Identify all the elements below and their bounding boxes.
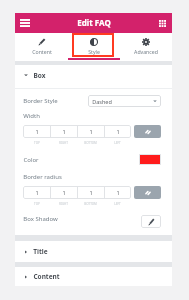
button[interactable]: 1 (105, 186, 131, 199)
staticText: Style (88, 48, 100, 55)
button[interactable]: Title (15, 241, 172, 262)
staticText: TOP (34, 202, 40, 206)
staticText: Advanced (134, 48, 158, 55)
staticText: Width (23, 112, 40, 120)
staticText: 1 (116, 189, 120, 196)
staticText: Border radius (23, 173, 62, 181)
staticText: RIGHT (59, 202, 68, 206)
staticText: 1 (62, 128, 66, 135)
staticText: Box (33, 71, 46, 80)
staticText: Edit FAQ (77, 17, 111, 28)
button[interactable]: Content (15, 267, 172, 286)
staticText: 1 (62, 189, 66, 196)
button[interactable]: 1 (78, 125, 104, 138)
button[interactable]: Box (15, 64, 172, 86)
button[interactable]: Dashed (88, 95, 161, 107)
staticText: 1 (35, 128, 39, 135)
staticText: Color (23, 156, 39, 164)
button[interactable]: Style (68, 33, 120, 61)
button[interactable]: Link values (134, 186, 161, 199)
button[interactable]: Edit box shadow (141, 215, 161, 228)
button[interactable]: 1 (23, 125, 50, 138)
button[interactable]: 1 (51, 186, 77, 199)
staticText: BOTTOM (84, 202, 97, 206)
button[interactable]: 1 (23, 186, 50, 199)
staticText: 1 (35, 189, 39, 196)
staticText: 1 (89, 189, 93, 196)
button[interactable]: Content (15, 33, 68, 61)
staticText: BOTTOM (84, 141, 97, 145)
button[interactable]: Link values (134, 125, 161, 138)
staticText: Content (33, 272, 60, 281)
button[interactable]: Advanced (120, 33, 172, 61)
button[interactable]: Menu (15, 13, 34, 33)
staticText: 1 (89, 128, 93, 135)
button[interactable]: Apps (152, 13, 172, 33)
staticText: LEFT (114, 202, 121, 206)
staticText: Border Style (23, 97, 58, 105)
staticText: Title (33, 247, 48, 256)
staticText: LEFT (114, 141, 121, 145)
staticText: RIGHT (59, 141, 68, 145)
staticText: 1 (116, 128, 120, 135)
staticText: Dashed (92, 98, 112, 105)
button[interactable]: 1 (78, 186, 104, 199)
button[interactable]: 1 (105, 125, 131, 138)
staticText: Content (32, 48, 52, 55)
button[interactable]: 1 (51, 125, 77, 138)
staticText: TOP (34, 141, 40, 145)
staticText: Box Shadow (23, 215, 58, 223)
